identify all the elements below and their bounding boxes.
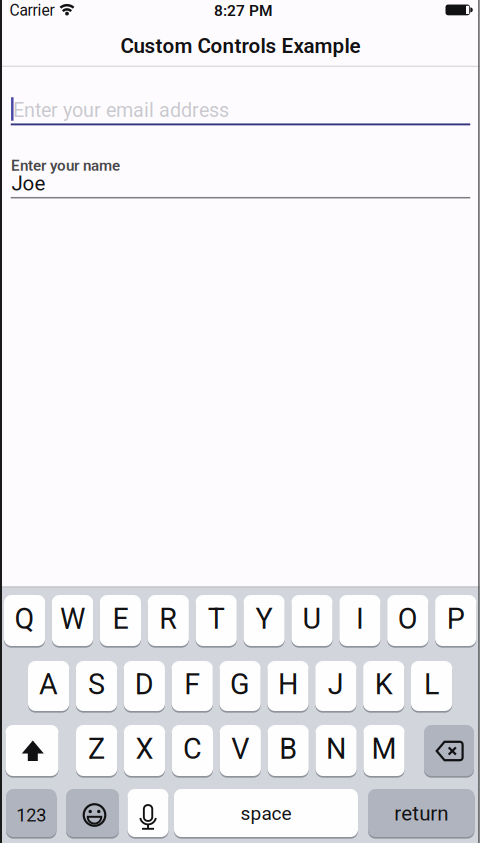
staticText: L (424, 668, 439, 701)
staticText: R (159, 602, 177, 636)
button[interactable]: I (339, 595, 380, 646)
staticText: W (60, 602, 85, 636)
button[interactable]: Enter your name (0, 0, 480, 843)
button[interactable]: K (363, 661, 404, 711)
button[interactable]: Dictate (127, 789, 169, 837)
button[interactable]: B (268, 725, 309, 776)
button[interactable]: O (387, 595, 428, 646)
staticText: M (371, 732, 396, 766)
staticText: Z (88, 732, 105, 766)
button[interactable]: U (291, 595, 333, 646)
button[interactable]: H (267, 661, 309, 711)
button[interactable]: P (435, 595, 476, 646)
staticText: 8:27 PM (214, 2, 273, 20)
staticText: G (230, 668, 250, 701)
button[interactable]: Q (4, 595, 45, 646)
button[interactable]: M (363, 725, 405, 776)
button[interactable]: F (172, 661, 213, 711)
staticText: P (447, 602, 465, 636)
button[interactable]: V (220, 725, 261, 776)
button[interactable]: D (124, 661, 165, 711)
button[interactable]: S (76, 661, 117, 711)
button[interactable]: Shift (5, 725, 58, 776)
button[interactable]: Y (243, 595, 285, 646)
button[interactable]: L (411, 661, 452, 711)
staticText: 123 (16, 805, 46, 826)
button[interactable]: T (196, 595, 237, 646)
button[interactable]: Emoji (66, 789, 119, 837)
staticText: J (328, 668, 344, 701)
button[interactable]: A (28, 661, 69, 711)
staticText: Y (256, 602, 273, 636)
staticText: O (398, 602, 418, 636)
button[interactable]: W (52, 595, 93, 646)
staticText: F (184, 668, 200, 701)
staticText: N (326, 732, 346, 766)
button[interactable]: Delete (424, 725, 474, 776)
staticText: D (135, 668, 154, 701)
button[interactable]: Enter your email address (0, 0, 480, 843)
staticText: Enter your name (11, 157, 120, 174)
button[interactable]: space (174, 789, 358, 837)
staticText: return (394, 801, 448, 826)
staticText: Joe (11, 171, 45, 195)
staticText: Q (15, 602, 35, 636)
staticText: U (302, 602, 321, 636)
staticText: K (375, 668, 393, 701)
button[interactable]: C (172, 725, 213, 776)
button[interactable]: X (124, 725, 165, 776)
staticText: Enter your email address (13, 99, 229, 122)
button[interactable]: R (148, 595, 189, 646)
staticText: Custom Controls Example (120, 34, 360, 58)
button[interactable]: N (315, 725, 357, 776)
button[interactable]: G (219, 661, 261, 711)
staticText: V (231, 732, 249, 766)
button[interactable]: 123 (6, 789, 56, 837)
staticText: E (112, 602, 128, 636)
staticText: S (88, 668, 105, 701)
button[interactable]: return (368, 789, 474, 837)
staticText: B (279, 732, 297, 766)
staticText: T (208, 602, 225, 636)
staticText: A (39, 668, 58, 701)
button[interactable]: J (315, 661, 356, 711)
staticText: X (135, 732, 153, 766)
staticText: Carrier (9, 1, 54, 19)
button[interactable]: Z (76, 725, 117, 776)
button[interactable]: E (100, 595, 141, 646)
staticText: H (278, 668, 298, 701)
staticText: I (356, 602, 364, 636)
staticText: C (183, 732, 202, 766)
staticText: space (240, 802, 291, 825)
